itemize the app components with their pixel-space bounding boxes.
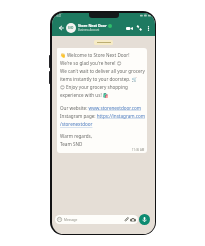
staticText: Warm regards, Team SND bbox=[60, 133, 93, 148]
button[interactable]: Call bbox=[134, 23, 144, 33]
button[interactable]: Attach bbox=[124, 217, 129, 222]
button[interactable]: Back bbox=[56, 23, 65, 32]
staticText: Message bbox=[64, 218, 78, 222]
staticText: Store Next Door bbox=[78, 23, 107, 28]
button[interactable]: Send voice message bbox=[139, 214, 150, 225]
staticText: 9:41 bbox=[56, 14, 62, 18]
staticText: 11:36 AM bbox=[132, 148, 145, 152]
staticText: SND bbox=[68, 26, 74, 30]
button[interactable]: Camera bbox=[130, 217, 136, 223]
staticText: Our website: www.storenextdoor.com Insta… bbox=[60, 105, 145, 128]
button[interactable]: More options bbox=[144, 24, 152, 32]
button[interactable]: Video call bbox=[124, 23, 134, 33]
button[interactable]: Message bbox=[55, 215, 138, 224]
staticText: 👋 Welcome to Store Next Door! We're so g… bbox=[60, 52, 145, 99]
staticText: Business Account bbox=[78, 28, 100, 32]
